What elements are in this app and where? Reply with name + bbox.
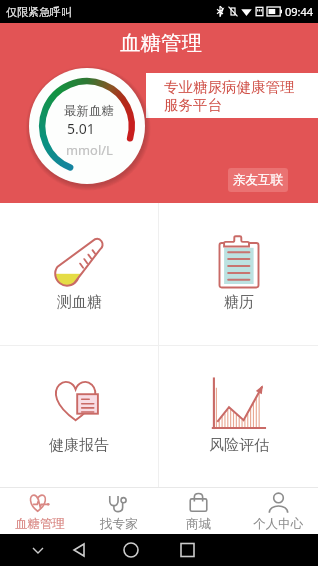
- staticText: 健康报告: [49, 436, 109, 455]
- button[interactable]: 血糖管理: [0, 488, 79, 534]
- staticText: 最新血糖: [64, 103, 114, 119]
- button[interactable]: 亲友互联: [228, 168, 288, 192]
- staticText: 找专家: [100, 516, 138, 532]
- staticText: 血糖管理: [120, 30, 202, 56]
- button[interactable]: 个人中心: [238, 488, 318, 534]
- staticText: 测血糖: [57, 293, 102, 312]
- staticText: 仅限紧急呼叫: [6, 5, 72, 19]
- button[interactable]: 商城: [158, 488, 238, 534]
- staticText: 服务平台: [164, 96, 222, 114]
- staticText: 糖历: [224, 293, 254, 312]
- staticText: 亲友互联: [233, 172, 283, 188]
- staticText: 风险评估: [209, 436, 269, 455]
- staticText: mmol/L: [66, 141, 113, 159]
- staticText: 个人中心: [253, 516, 303, 532]
- staticText: 09:44: [285, 4, 314, 19]
- button[interactable]: 糖历: [159, 203, 318, 345]
- staticText: 血糖管理: [15, 516, 65, 532]
- staticText: 商城: [186, 516, 211, 532]
- button[interactable]: 风险评估: [159, 346, 318, 487]
- button[interactable]: 测血糖: [0, 203, 158, 345]
- staticText: 专业糖尿病健康管理: [164, 78, 295, 96]
- button[interactable]: 健康报告: [0, 346, 158, 487]
- staticText: 5.01: [67, 119, 95, 138]
- button[interactable]: 找专家: [79, 488, 158, 534]
